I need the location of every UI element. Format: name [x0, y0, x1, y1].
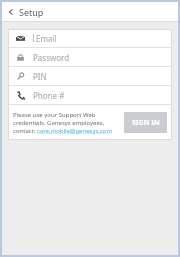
- button[interactable]: Back: [2, 2, 19, 21]
- staticText: PIN: [33, 71, 47, 82]
- staticText: Setup: [19, 6, 44, 18]
- staticText: Please use your Support Web: [13, 111, 96, 119]
- staticText: Phone #: [33, 90, 65, 101]
- staticText: SIGN IN: [132, 118, 160, 128]
- button[interactable]: SIGN IN: [124, 112, 167, 133]
- button[interactable]: Phone #: [8, 86, 172, 104]
- staticText: Email: [36, 33, 57, 44]
- button[interactable]: Password: [8, 48, 172, 66]
- staticText: contact:: [13, 127, 37, 135]
- button[interactable]: Email: [8, 29, 172, 47]
- button[interactable]: care.mobile@genesys.com: [37, 127, 113, 135]
- button[interactable]: PIN: [8, 67, 172, 85]
- staticText: Password: [33, 52, 70, 63]
- staticText: credentials. Genesys employees,: [13, 119, 105, 127]
